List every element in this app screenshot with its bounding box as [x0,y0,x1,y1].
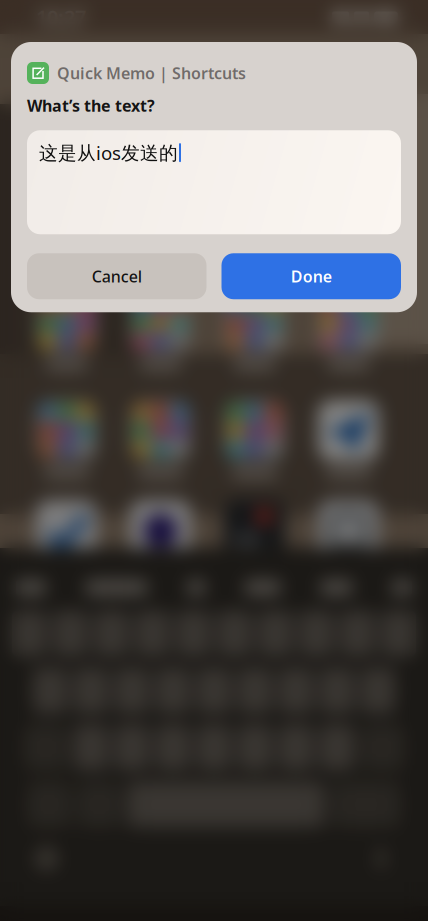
staticText: Cancel [92,266,142,287]
staticText: 10:27 [36,4,86,30]
staticText: Done [291,266,332,287]
staticText: 这是从ios发送的 [39,140,178,165]
button[interactable]: Cancel [27,253,206,299]
staticText: Quick Memo | Shortcuts [57,62,246,84]
staticText: What’s the text? [27,95,155,116]
button[interactable]: Done [221,253,401,299]
